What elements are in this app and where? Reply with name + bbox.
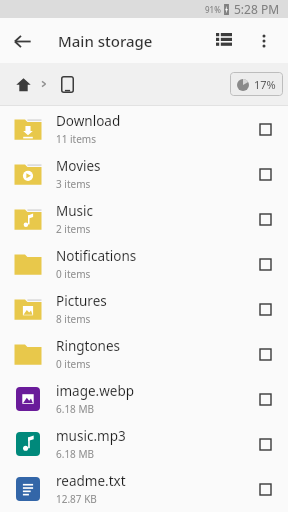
staticText: 0 items	[56, 357, 91, 371]
staticText: Movies	[56, 157, 101, 175]
staticText: Pictures	[56, 292, 107, 310]
button[interactable]: Select readme.txt	[246, 470, 284, 508]
button[interactable]: Select Music	[246, 200, 284, 238]
button[interactable]: Select Movies	[246, 155, 284, 193]
button[interactable]: Select music.mp3	[246, 425, 284, 463]
staticText: 6.18 MB	[56, 402, 95, 416]
button[interactable]: Select Pictures	[246, 290, 284, 328]
button[interactable]: 17%	[230, 72, 283, 96]
staticText: music.mp3	[56, 427, 126, 445]
button[interactable]: Select image.webp	[246, 380, 284, 418]
button[interactable]: List view	[204, 21, 244, 61]
button[interactable]: Ringtones	[0, 331, 288, 376]
staticText: 5:28 PM	[234, 1, 280, 17]
button[interactable]: Notifications	[0, 241, 288, 286]
staticText: 3 items	[56, 177, 91, 191]
button[interactable]: readme.txt	[0, 466, 288, 511]
button[interactable]: Back	[0, 19, 44, 63]
staticText: 91%	[205, 4, 221, 15]
staticText: 0 items	[56, 267, 91, 281]
button[interactable]: Main storage	[54, 71, 80, 97]
button[interactable]: Pictures	[0, 286, 288, 331]
staticText: 12.87 KB	[56, 492, 97, 506]
staticText: Notifications	[56, 247, 137, 265]
staticText: 6.18 MB	[56, 447, 95, 461]
button[interactable]: More options	[244, 21, 284, 61]
staticText: 11 items	[56, 132, 97, 146]
staticText: Music	[56, 202, 94, 220]
staticText: readme.txt	[56, 472, 126, 490]
staticText: 17%	[254, 77, 276, 92]
staticText: Main storage	[58, 31, 153, 51]
staticText: image.webp	[56, 382, 135, 400]
button[interactable]: Music	[0, 196, 288, 241]
staticText: 8 items	[56, 312, 91, 326]
button[interactable]: Select Ringtones	[246, 335, 284, 373]
button[interactable]: music.mp3	[0, 421, 288, 466]
button[interactable]: Select Download	[246, 110, 284, 148]
staticText: Download	[56, 112, 121, 130]
button[interactable]: Select Notifications	[246, 245, 284, 283]
button[interactable]: Movies	[0, 151, 288, 196]
button[interactable]: Download	[0, 106, 288, 151]
button[interactable]: Home	[10, 71, 36, 97]
button[interactable]: image.webp	[0, 376, 288, 421]
staticText: Ringtones	[56, 337, 120, 355]
staticText: 2 items	[56, 222, 91, 236]
